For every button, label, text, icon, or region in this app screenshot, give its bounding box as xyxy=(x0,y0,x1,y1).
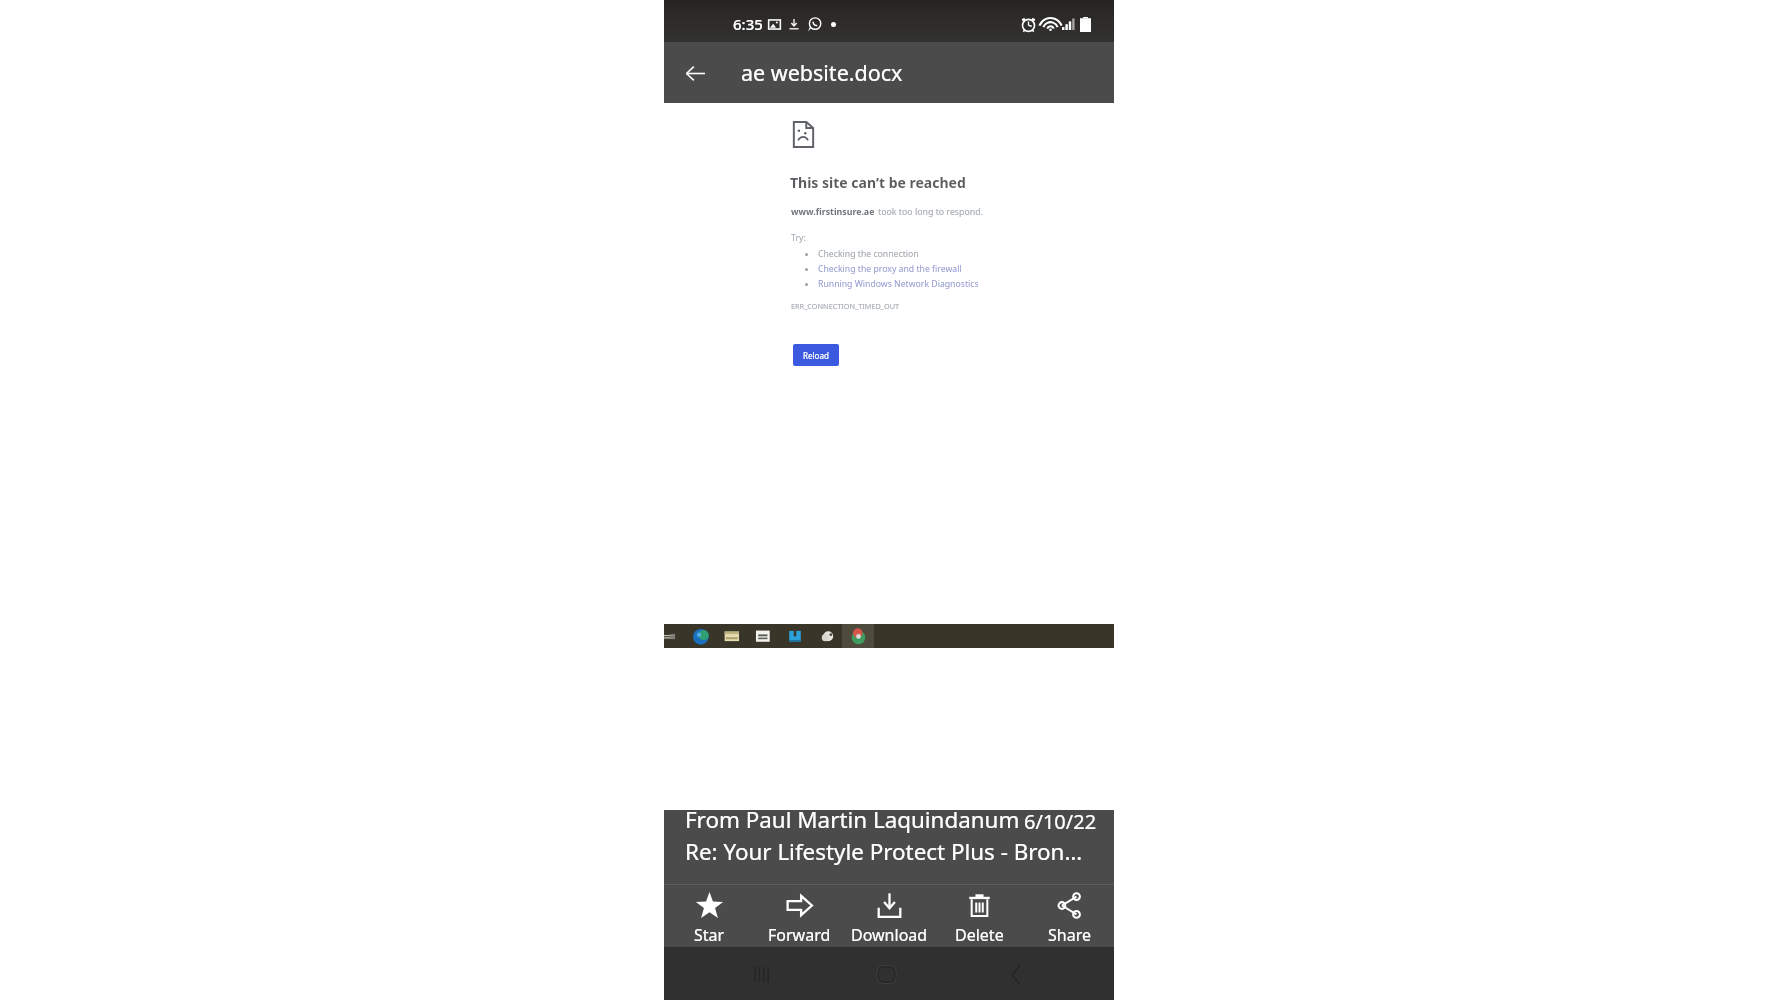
button[interactable]: Forward xyxy=(754,885,844,947)
staticText: Forward xyxy=(768,924,831,946)
staticText: 6:35 xyxy=(733,14,763,34)
staticText: 6/10/22 xyxy=(1024,808,1097,835)
staticText: Download xyxy=(851,924,928,946)
button[interactable]: Star xyxy=(664,885,754,947)
staticText: Running Windows Network Diagnostics xyxy=(818,278,979,290)
staticText: Reload xyxy=(803,350,829,361)
staticText: From Paul Martin Laquindanum xyxy=(685,804,1020,835)
staticText: Try: xyxy=(791,232,806,244)
staticText: ERR_CONNECTION_TIMED_OUT xyxy=(791,301,900,311)
staticText: Checking the connection xyxy=(818,248,919,260)
button[interactable]: Delete xyxy=(934,885,1024,947)
button[interactable]: Share xyxy=(1024,885,1114,947)
staticText: took too long to respond. xyxy=(878,206,983,218)
button[interactable]: Reload xyxy=(793,344,839,366)
button[interactable]: Download xyxy=(844,885,934,947)
staticText: Delete xyxy=(955,924,1004,946)
staticText: Re: Your Lifestyle Protect Plus - Bron… xyxy=(685,836,1083,867)
staticText: www.firstinsure.ae xyxy=(791,206,875,218)
staticText: Share xyxy=(1048,924,1091,946)
button[interactable]: From Paul Martin Laquindanum xyxy=(664,810,1114,884)
staticText: ae website.docx xyxy=(741,58,903,87)
button[interactable]: Back xyxy=(677,55,713,91)
staticText: Star xyxy=(694,924,725,946)
staticText: Checking the proxy and the firewall xyxy=(818,263,962,275)
staticText: This site can’t be reached xyxy=(790,173,966,192)
